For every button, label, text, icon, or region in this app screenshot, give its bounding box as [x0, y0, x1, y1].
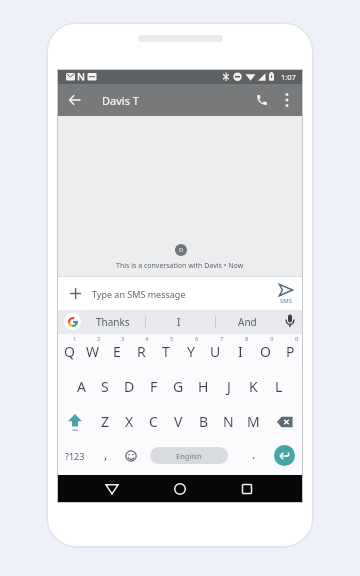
staticText: V [174, 412, 183, 431]
staticText: I [177, 315, 181, 329]
staticText: SMS [280, 297, 293, 305]
staticText: T [162, 342, 170, 361]
staticText: E [113, 342, 121, 361]
staticText: 1:07 [281, 72, 296, 82]
staticText: Q [64, 342, 75, 361]
staticText: C [149, 412, 158, 431]
staticText: L [275, 377, 283, 396]
staticText: 1 [73, 335, 77, 343]
staticText: A [77, 377, 86, 396]
staticText: D [124, 377, 135, 396]
staticText: 6 [195, 335, 199, 343]
staticText: And [238, 315, 257, 329]
staticText: Thanks [96, 315, 130, 329]
staticText: 5 [170, 335, 174, 343]
staticText: 7 [220, 335, 224, 343]
staticText: 9 [270, 335, 274, 343]
staticText: H [198, 377, 209, 396]
staticText: Type an SMS message [92, 288, 186, 300]
staticText: F [150, 377, 158, 396]
staticText: I [238, 342, 243, 361]
staticText: . [252, 446, 256, 462]
staticText: Davis T [102, 93, 139, 108]
staticText: S [101, 377, 109, 396]
staticText: G [173, 377, 184, 396]
staticText: K [249, 377, 258, 396]
staticText: W [86, 342, 100, 361]
staticText: D [179, 246, 184, 254]
staticText: Z [101, 412, 110, 431]
staticText: English [176, 451, 202, 461]
staticText: ?123 [65, 450, 85, 462]
staticText: U [210, 342, 221, 361]
staticText: This is a conversation with Davis • Now [116, 261, 244, 271]
staticText: R [137, 342, 146, 361]
staticText: B [199, 412, 209, 431]
staticText: Y [187, 342, 195, 361]
staticText: J [227, 377, 231, 396]
staticText: N [223, 412, 234, 431]
staticText: P [286, 342, 295, 361]
staticText: O [260, 342, 271, 361]
staticText: , [104, 446, 108, 462]
staticText: 3 [121, 335, 125, 343]
staticText: 4 [145, 335, 149, 343]
staticText: X [125, 412, 134, 431]
staticText: M [247, 412, 260, 431]
staticText: 8 [245, 335, 249, 343]
staticText: 2 [97, 335, 101, 343]
staticText: 0 [295, 335, 299, 343]
